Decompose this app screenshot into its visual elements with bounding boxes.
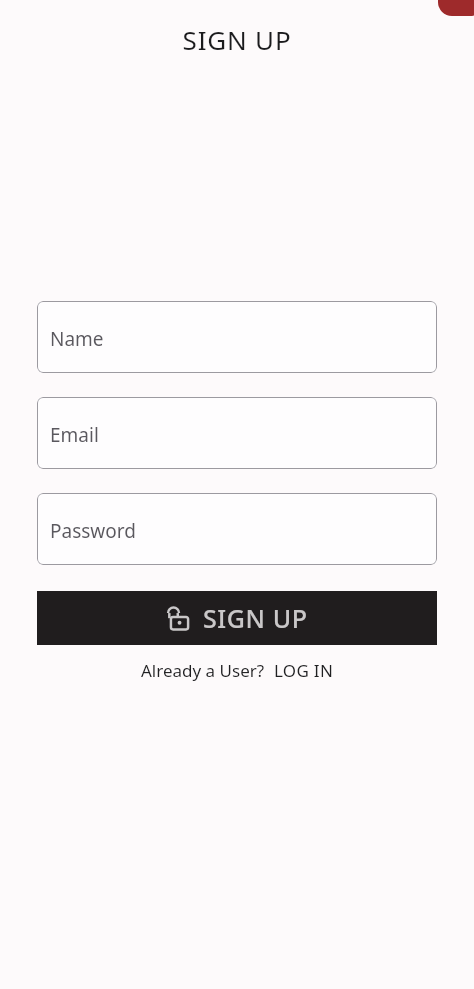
staticText: Email	[50, 422, 99, 448]
staticText: LOG IN	[274, 659, 334, 682]
button[interactable]: Name	[37, 301, 437, 373]
button[interactable]: Sign up	[37, 591, 437, 645]
staticText: Already a User?	[141, 659, 265, 682]
staticText: Password	[50, 518, 136, 544]
button[interactable]: Password	[37, 493, 437, 565]
button[interactable]: Email	[37, 397, 437, 469]
other: Sign up	[166, 605, 192, 631]
staticText: Name	[50, 326, 104, 352]
staticText: SIGN UP	[0, 22, 474, 57]
button[interactable]: LOG IN	[274, 659, 334, 682]
staticText: SIGN UP	[203, 601, 308, 635]
